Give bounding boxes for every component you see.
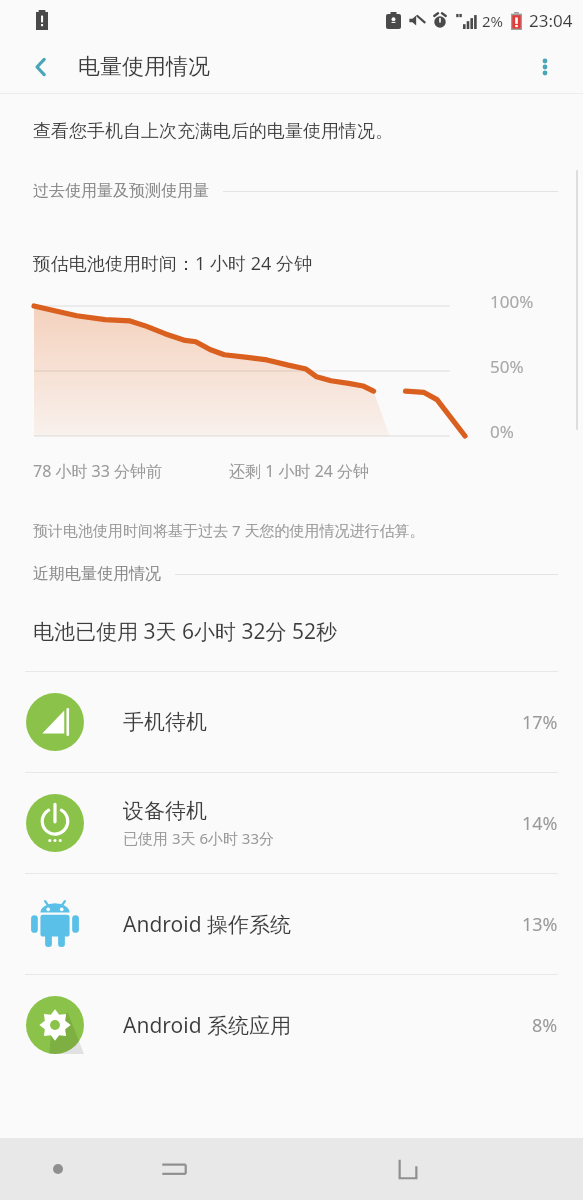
staticText: 78 小时 33 分钟前 [33,460,163,482]
staticText: 14% [522,811,558,836]
button[interactable]: More options [523,45,567,89]
staticText: 查看您手机自上次充满电后的电量使用情况。 [33,120,393,143]
staticText: 电量使用情况 [78,53,210,81]
button[interactable]: Menu [0,1138,116,1200]
staticText: 电池已使用 3天 6小时 32分 52秒 [33,617,337,646]
staticText: 已使用 3天 6小时 33分 [123,828,275,848]
staticText: 近期电量使用情况 [33,564,161,584]
staticText: 13% [522,912,558,937]
button[interactable]: 设备待机 [0,773,583,873]
staticText: 17% [522,710,558,735]
staticText: 0% [490,420,514,440]
staticText: 预估电池使用时间：1 小时 24 分钟 [33,251,312,276]
staticText: 50% [490,355,524,375]
staticText: 还剩 1 小时 24 分钟 [229,460,370,482]
staticText: Android 操作系统 [123,910,292,939]
staticText: 预计电池使用时间将基于过去 7 天您的使用情况进行估算。 [33,520,425,540]
button[interactable]: Android 操作系统 [0,874,583,974]
button[interactable]: Back [349,1138,466,1200]
staticText: 23:04 [529,9,573,32]
staticText: 8% [532,1013,558,1038]
button[interactable]: 手机待机 [0,672,583,772]
staticText: 100% [490,290,534,310]
staticText: 设备待机 [123,798,207,824]
button[interactable]: Android 系统应用 [0,975,583,1075]
staticText: 2% [482,11,504,31]
staticText: 手机待机 [123,709,207,735]
button[interactable]: Recents [116,1138,232,1200]
button[interactable]: Back [20,46,62,88]
staticText: 过去使用量及预测使用量 [33,181,209,201]
staticText: Android 系统应用 [123,1011,292,1040]
